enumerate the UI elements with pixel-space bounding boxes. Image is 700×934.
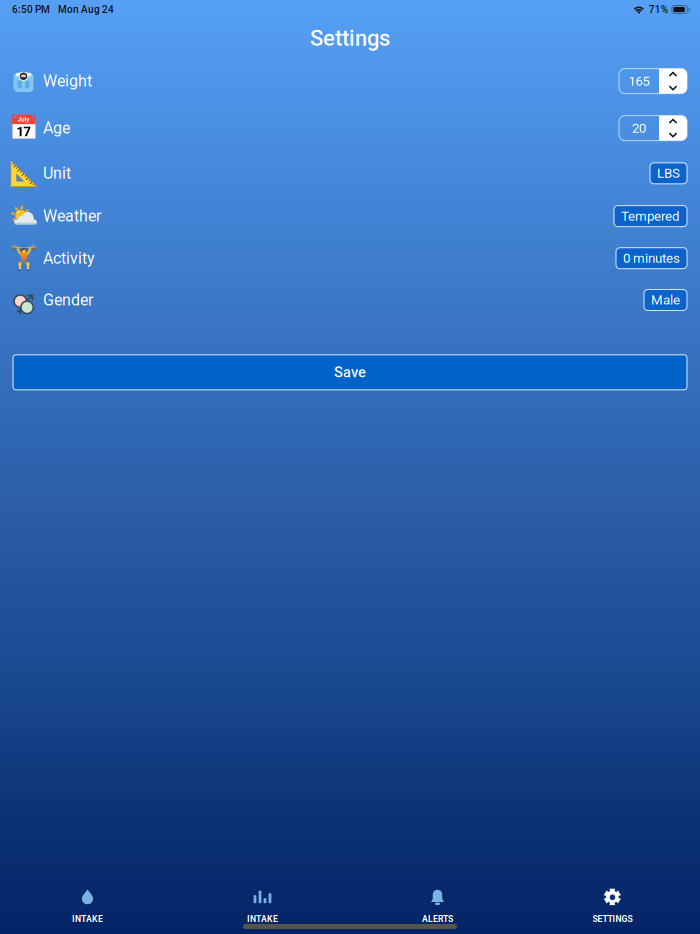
button[interactable]: Male [644, 289, 687, 310]
button[interactable]: 📅 [0, 105, 700, 152]
staticText: Mon Aug 24 [58, 4, 114, 15]
button[interactable]: LBS [650, 163, 687, 184]
button[interactable]: Save [0, 355, 700, 390]
staticText: Activity [43, 249, 95, 268]
button[interactable]: 🏋️ [0, 237, 700, 279]
button[interactable]: SETTINGS [525, 879, 700, 934]
staticText: Gender [43, 291, 93, 309]
staticText: Age [43, 119, 70, 137]
staticText: 165 [628, 73, 649, 89]
staticText: 0 minutes [623, 250, 680, 266]
staticText: INTAKE [72, 914, 103, 924]
button[interactable]: Tempered [614, 206, 687, 227]
staticText: SETTINGS [592, 914, 632, 924]
staticText: ALERTS [422, 914, 453, 924]
staticText: Weight [43, 72, 92, 90]
staticText: 📅 [8, 114, 38, 142]
staticText: Weather [43, 207, 101, 225]
button[interactable]: ALERTS [350, 879, 525, 934]
staticText: Male [651, 292, 680, 308]
staticText: Settings [310, 25, 390, 51]
staticText: Tempered [621, 208, 680, 224]
staticText: INTAKE [247, 914, 278, 924]
staticText: Save [334, 364, 366, 381]
staticText: 20 [632, 120, 646, 136]
button[interactable]: Adjust 20 [659, 116, 687, 141]
button[interactable]: ⛅ [0, 195, 700, 237]
button[interactable]: Gender [0, 279, 700, 321]
button[interactable]: 📐 [0, 152, 700, 195]
button[interactable]: INTAKE [175, 879, 350, 934]
staticText: ⛅ [8, 202, 38, 230]
staticText: 6:50 PM [12, 4, 50, 15]
staticText: LBS [657, 165, 680, 181]
button[interactable]: 0 minutes [616, 248, 687, 269]
staticText: 🏋️ [8, 244, 38, 272]
staticText: 71% [649, 4, 668, 15]
staticText: 📐 [8, 160, 38, 187]
button[interactable]: INTAKE [0, 879, 175, 934]
button[interactable]: Weight [0, 58, 700, 105]
staticText: Unit [43, 164, 71, 183]
button[interactable]: Adjust 165 [659, 69, 687, 94]
